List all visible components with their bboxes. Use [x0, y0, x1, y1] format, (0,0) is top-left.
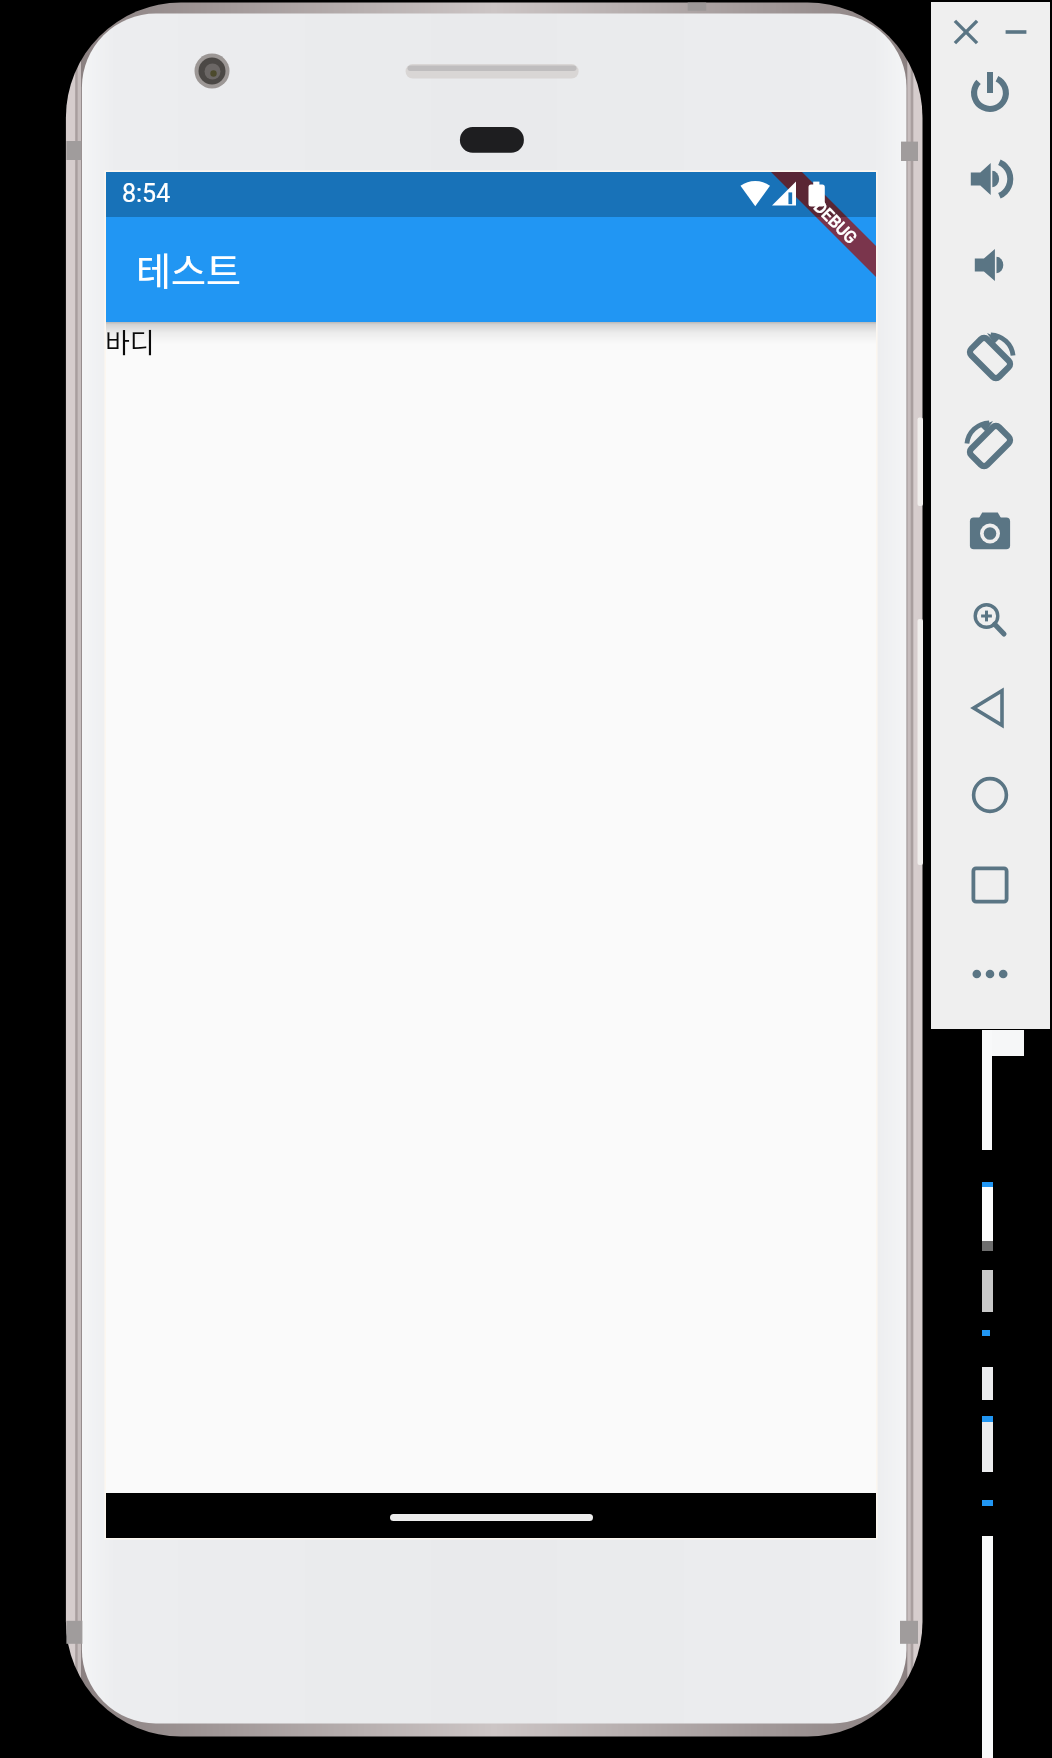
- button[interactable]: Minimize: [994, 10, 1038, 54]
- button[interactable]: Power: [960, 63, 1020, 123]
- button[interactable]: Volume up: [960, 149, 1020, 209]
- button[interactable]: Close: [944, 10, 988, 54]
- button[interactable]: Rotate left: [960, 328, 1020, 388]
- staticText: 8:54: [122, 179, 171, 208]
- button[interactable]: Overview: [960, 855, 1020, 915]
- button[interactable]: Volume down: [960, 235, 1020, 295]
- staticText: DEBUG: [810, 197, 861, 248]
- button[interactable]: Home: [960, 765, 1020, 825]
- button[interactable]: More: [960, 944, 1020, 1004]
- staticText: 바디: [105, 322, 155, 361]
- staticText: 테스트: [136, 241, 241, 296]
- button[interactable]: Take screenshot: [960, 503, 1020, 563]
- button[interactable]: Zoom: [960, 590, 1020, 650]
- button[interactable]: Back: [960, 678, 1020, 738]
- button[interactable]: 테스트: [106, 217, 876, 322]
- button[interactable]: Home gesture handle: [390, 1514, 593, 1521]
- button[interactable]: Rotate right: [960, 416, 1020, 476]
